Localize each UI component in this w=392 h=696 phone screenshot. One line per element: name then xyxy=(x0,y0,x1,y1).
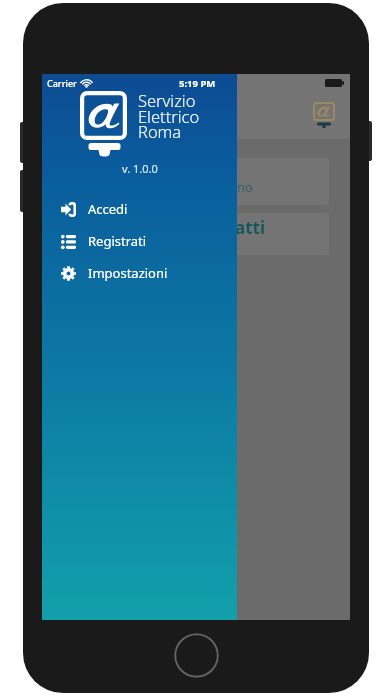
staticText: 5:19 PM xyxy=(179,77,216,90)
staticText: v. 1.0.0 xyxy=(122,161,158,176)
staticText: Accedi xyxy=(88,200,128,218)
button[interactable]: Buongiorno xyxy=(63,158,329,205)
staticText: Registrati xyxy=(88,232,147,250)
staticText: Servizio xyxy=(138,89,196,111)
staticText: Roma xyxy=(138,120,182,142)
button[interactable]: Impostazioni xyxy=(42,257,237,289)
staticText: Impostazioni xyxy=(88,264,168,282)
staticText: Carrier xyxy=(47,77,77,89)
button[interactable]: Accedi xyxy=(42,193,237,225)
button[interactable]: Home xyxy=(174,633,219,678)
button[interactable]: Home logo xyxy=(306,98,342,134)
button[interactable]: Registrati xyxy=(42,225,237,257)
button[interactable]: Contatti xyxy=(63,213,329,255)
staticText: Elettrico xyxy=(138,105,200,127)
staticText: Contatti xyxy=(195,216,265,239)
staticText: Buongiorno xyxy=(180,178,253,196)
